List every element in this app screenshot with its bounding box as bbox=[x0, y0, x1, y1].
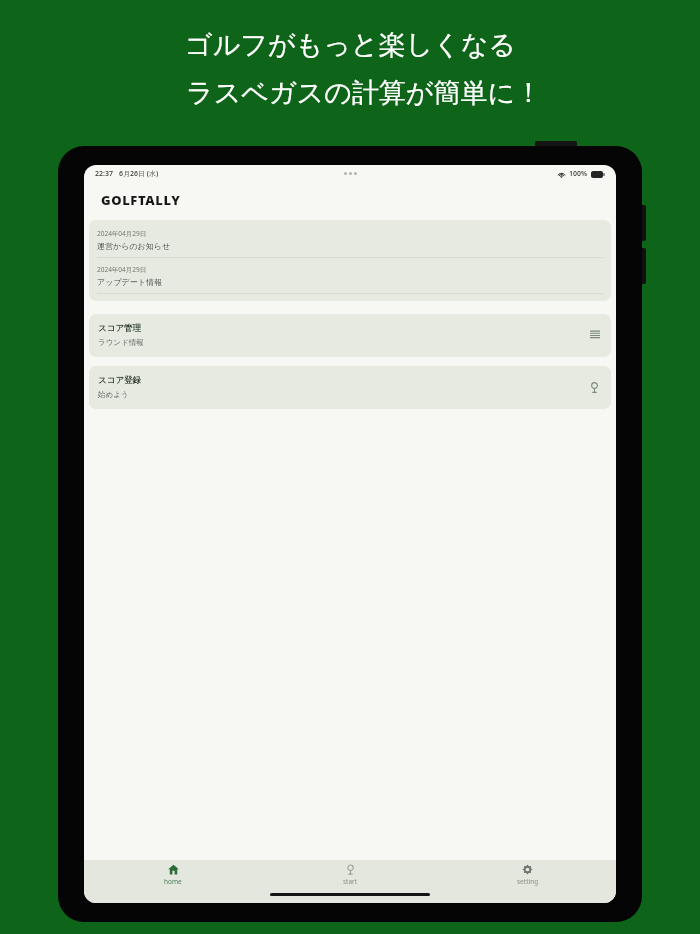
button[interactable]: home bbox=[84, 861, 262, 889]
staticText: 22:37 bbox=[95, 169, 113, 179]
button[interactable]: 2024年04月29日 bbox=[89, 222, 611, 257]
staticText: 始めよう bbox=[98, 390, 129, 399]
button[interactable]: start bbox=[262, 861, 439, 889]
staticText: 運営からのお知らせ bbox=[97, 241, 171, 251]
staticText: GOLFTALLY bbox=[101, 191, 181, 209]
button[interactable]: setting bbox=[439, 861, 616, 889]
staticText: ラスベガスの計算が簡単に！ bbox=[186, 76, 543, 110]
other: スコア登録 bbox=[589, 382, 600, 393]
staticText: 6月26日 (水) bbox=[119, 169, 159, 179]
button[interactable]: 2024年04月29日 bbox=[89, 258, 611, 293]
staticText: スコア登録 bbox=[98, 375, 142, 386]
staticText: ゴルフがもっと楽しくなる bbox=[185, 28, 516, 62]
other: スコア管理 bbox=[590, 330, 600, 340]
staticText: start bbox=[343, 877, 358, 886]
staticText: 100% bbox=[569, 169, 588, 179]
button[interactable]: スコア登録 bbox=[89, 366, 611, 409]
staticText: ラウンド情報 bbox=[98, 338, 144, 347]
button[interactable]: スコア管理 bbox=[89, 314, 611, 357]
staticText: home bbox=[164, 877, 182, 886]
staticText: アップデート情報 bbox=[97, 277, 162, 287]
staticText: 2024年04月29日 bbox=[97, 229, 147, 238]
staticText: スコア管理 bbox=[98, 323, 142, 334]
staticText: 2024年04月29日 bbox=[97, 265, 147, 274]
staticText: setting bbox=[517, 877, 539, 886]
